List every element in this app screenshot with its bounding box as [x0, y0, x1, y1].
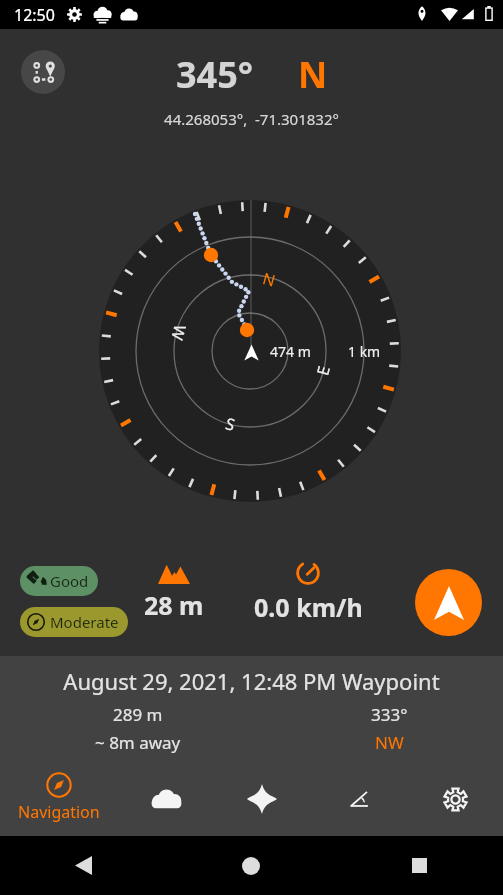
staticText: 345° — [176, 50, 254, 99]
staticText: Good — [50, 571, 89, 591]
staticText: 0.0 km/h — [254, 590, 363, 624]
button[interactable]: Astronomy — [218, 773, 306, 825]
staticText: 28 m — [144, 588, 204, 622]
staticText: Navigation — [18, 801, 100, 823]
staticText: S — [223, 412, 238, 436]
staticText: N — [259, 268, 278, 292]
staticText: 289 m — [113, 703, 163, 726]
staticText: 44.268053°, -71.301832° — [0, 109, 503, 129]
staticText: Moderate — [50, 612, 119, 632]
button[interactable]: Weather — [122, 773, 210, 825]
staticText: E — [311, 363, 335, 378]
staticText: 474 m — [270, 342, 311, 361]
button[interactable]: Tools — [315, 773, 403, 825]
staticText: 333° — [371, 703, 408, 726]
staticText: 12:50 — [14, 4, 55, 26]
button[interactable]: Settings — [411, 773, 499, 825]
staticText: 1 km — [348, 342, 381, 361]
button[interactable]: Moderate — [20, 607, 128, 637]
staticText: ~ 8m away — [95, 731, 181, 754]
staticText: August 29, 2021, 12:48 PM Waypoint — [0, 666, 503, 696]
staticText: W — [166, 322, 191, 343]
button[interactable]: Good — [20, 566, 98, 596]
button[interactable]: Navigation — [4, 772, 114, 827]
staticText: N — [298, 50, 328, 99]
button[interactable]: Routes — [21, 50, 65, 94]
button[interactable]: Navigate — [415, 569, 482, 636]
staticText: NW — [375, 731, 404, 754]
